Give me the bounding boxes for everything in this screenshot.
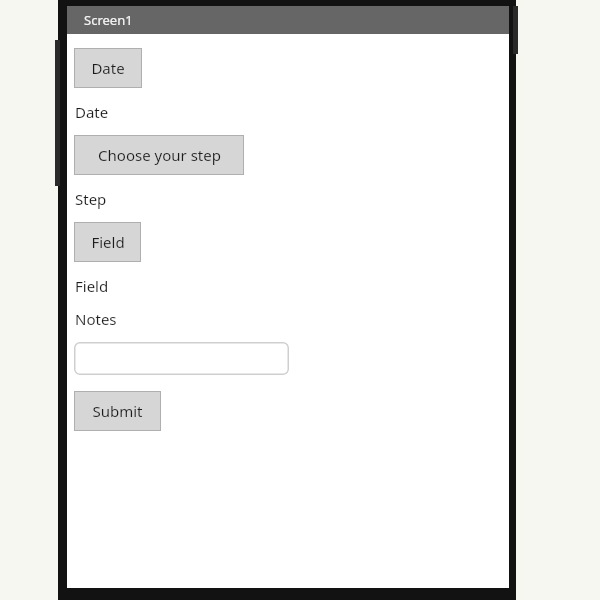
staticText: Field bbox=[75, 276, 109, 296]
button[interactable]: Field bbox=[74, 222, 141, 262]
button[interactable]: Submit bbox=[74, 391, 161, 431]
button[interactable]: Choose your step bbox=[74, 135, 244, 175]
button[interactable]: Date bbox=[74, 48, 142, 88]
button[interactable] bbox=[74, 342, 289, 375]
staticText: Date bbox=[91, 58, 125, 78]
staticText: Field bbox=[91, 232, 125, 252]
staticText: Submit bbox=[92, 401, 143, 421]
staticText: Choose your step bbox=[98, 145, 221, 165]
staticText: Step bbox=[75, 189, 107, 209]
staticText: Screen1 bbox=[84, 11, 133, 29]
staticText: Notes bbox=[75, 309, 117, 329]
staticText: Date bbox=[75, 102, 109, 122]
